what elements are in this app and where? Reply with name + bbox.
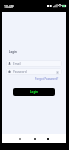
button[interactable]: Login <box>13 88 55 96</box>
button[interactable]: Password <box>6 68 62 75</box>
button[interactable]: Forgot Password? <box>35 77 59 81</box>
staticText: Password <box>13 70 27 74</box>
staticText: Login <box>30 90 38 94</box>
staticText: 10:45 <box>4 4 13 9</box>
button[interactable]: Recents <box>46 137 50 141</box>
button[interactable]: Show password <box>55 70 59 74</box>
button[interactable]: Home <box>33 137 37 141</box>
button[interactable]: Email <box>6 60 62 67</box>
staticText: Login <box>9 50 17 54</box>
staticText: Email <box>13 62 21 66</box>
button[interactable]: Back <box>18 137 22 141</box>
